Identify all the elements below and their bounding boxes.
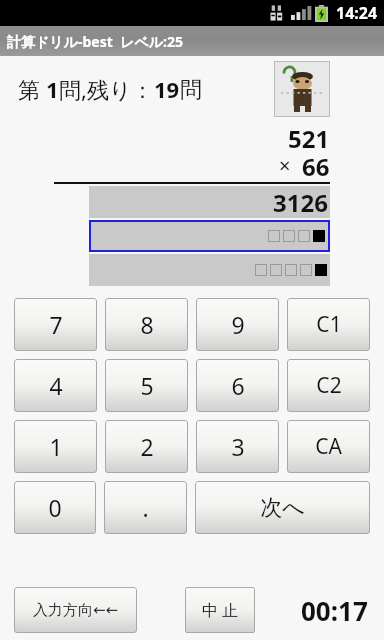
- staticText: 問,残り：: [59, 74, 154, 104]
- staticText: 19: [154, 74, 180, 104]
- staticText: 8: [140, 309, 154, 340]
- button[interactable]: 9: [196, 298, 279, 351]
- button[interactable]: CA: [287, 420, 370, 473]
- button[interactable]: 6: [196, 359, 279, 412]
- staticText: 0: [48, 492, 62, 523]
- staticText: 4: [49, 370, 63, 401]
- staticText: 3126: [273, 186, 328, 218]
- staticText: 66: [302, 150, 330, 180]
- button[interactable]: 5: [105, 359, 188, 412]
- staticText: 14:24: [336, 2, 378, 24]
- staticText: 入力方向←←: [33, 601, 119, 620]
- button[interactable]: 次へ: [195, 481, 370, 534]
- staticText: 00:17: [301, 593, 368, 628]
- staticText: 6: [231, 370, 245, 401]
- button[interactable]: 7: [14, 298, 97, 351]
- button[interactable]: 入力方向←←: [14, 587, 137, 633]
- staticText: 中 止: [202, 599, 239, 621]
- staticText: 問: [180, 76, 202, 104]
- staticText: C1: [316, 310, 342, 339]
- staticText: 1: [46, 74, 59, 104]
- button[interactable]: .: [104, 481, 187, 534]
- button[interactable]: 中 止: [185, 587, 255, 633]
- button[interactable]: C1: [287, 298, 370, 351]
- button[interactable]: C2: [287, 359, 370, 412]
- staticText: 第: [18, 74, 46, 104]
- button[interactable]: 8: [105, 298, 188, 351]
- staticText: CA: [315, 432, 342, 461]
- button[interactable]: 3: [196, 420, 279, 473]
- staticText: 1: [49, 431, 63, 462]
- button[interactable]: 1: [14, 420, 97, 473]
- staticText: 9: [231, 309, 245, 340]
- staticText: 5: [140, 370, 154, 401]
- staticText: ×: [279, 152, 291, 179]
- other: Mascot image: [274, 61, 330, 117]
- staticText: 7: [49, 309, 63, 340]
- button[interactable]: 0: [14, 481, 96, 534]
- staticText: 3: [231, 431, 245, 462]
- button[interactable]: 2: [105, 420, 188, 473]
- staticText: .: [142, 492, 149, 523]
- button[interactable]: [89, 254, 330, 286]
- staticText: 次へ: [260, 494, 305, 522]
- staticText: 521: [288, 122, 330, 150]
- staticText: 2: [140, 431, 154, 462]
- button[interactable]: [89, 220, 330, 252]
- staticText: 計算ドリル-best レベル:25: [7, 32, 183, 51]
- button[interactable]: 4: [14, 359, 97, 412]
- staticText: C2: [316, 371, 342, 400]
- button[interactable]: 3126: [89, 186, 330, 218]
